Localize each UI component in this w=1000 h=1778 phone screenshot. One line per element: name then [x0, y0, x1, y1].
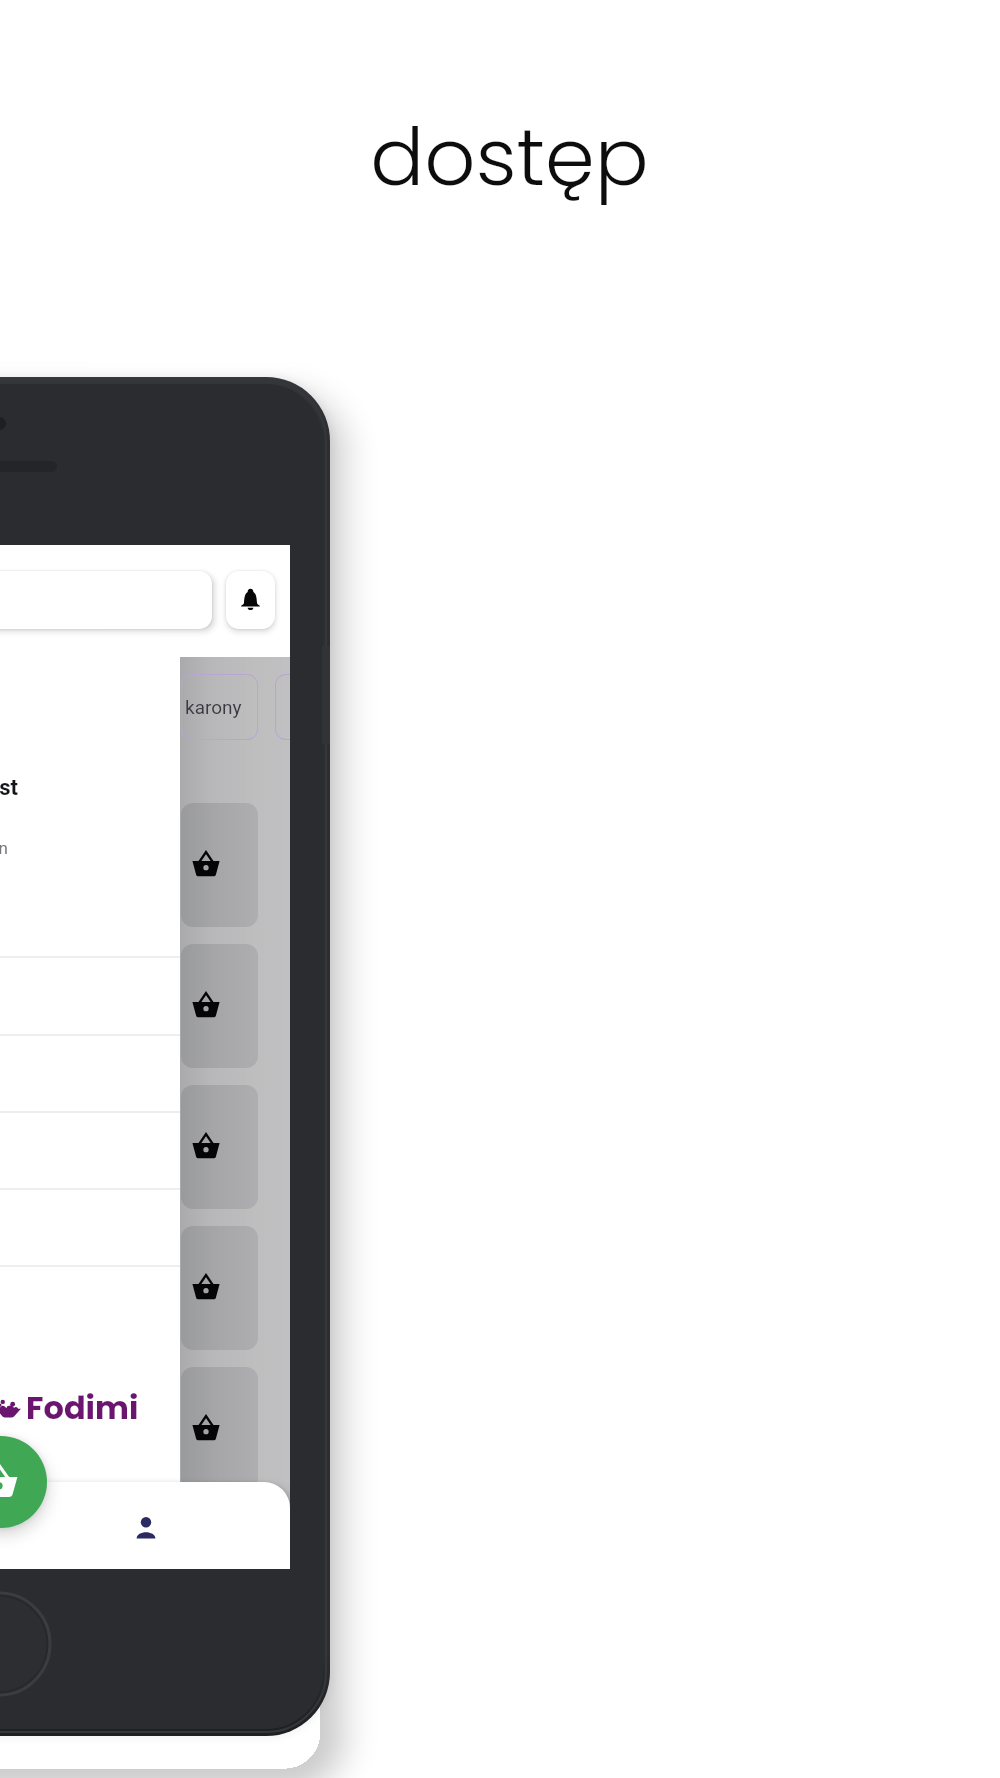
button[interactable]: Fodimi	[0, 1385, 139, 1427]
staticText: Fodimi	[26, 1385, 139, 1427]
button[interactable]: Category	[275, 674, 290, 740]
button[interactable]: Profile	[114, 1482, 178, 1569]
button[interactable]: Lists	[0, 1482, 16, 1569]
button[interactable]: Product	[181, 1226, 258, 1350]
button[interactable]: Product	[181, 1085, 258, 1209]
staticText: wybierz produkty z listy poniżej n	[0, 838, 8, 858]
staticText: karony	[185, 696, 242, 718]
staticText: dostęp	[370, 101, 649, 213]
button[interactable]: Add item	[0, 1436, 47, 1528]
button[interactable]: Product	[181, 944, 258, 1068]
staticText: Lista zakupów jest	[0, 775, 18, 801]
button[interactable]: Product	[181, 803, 258, 927]
button[interactable]: karony	[181, 674, 258, 740]
button[interactable]: Product	[181, 1367, 258, 1491]
button[interactable]: Notifications	[226, 571, 275, 629]
